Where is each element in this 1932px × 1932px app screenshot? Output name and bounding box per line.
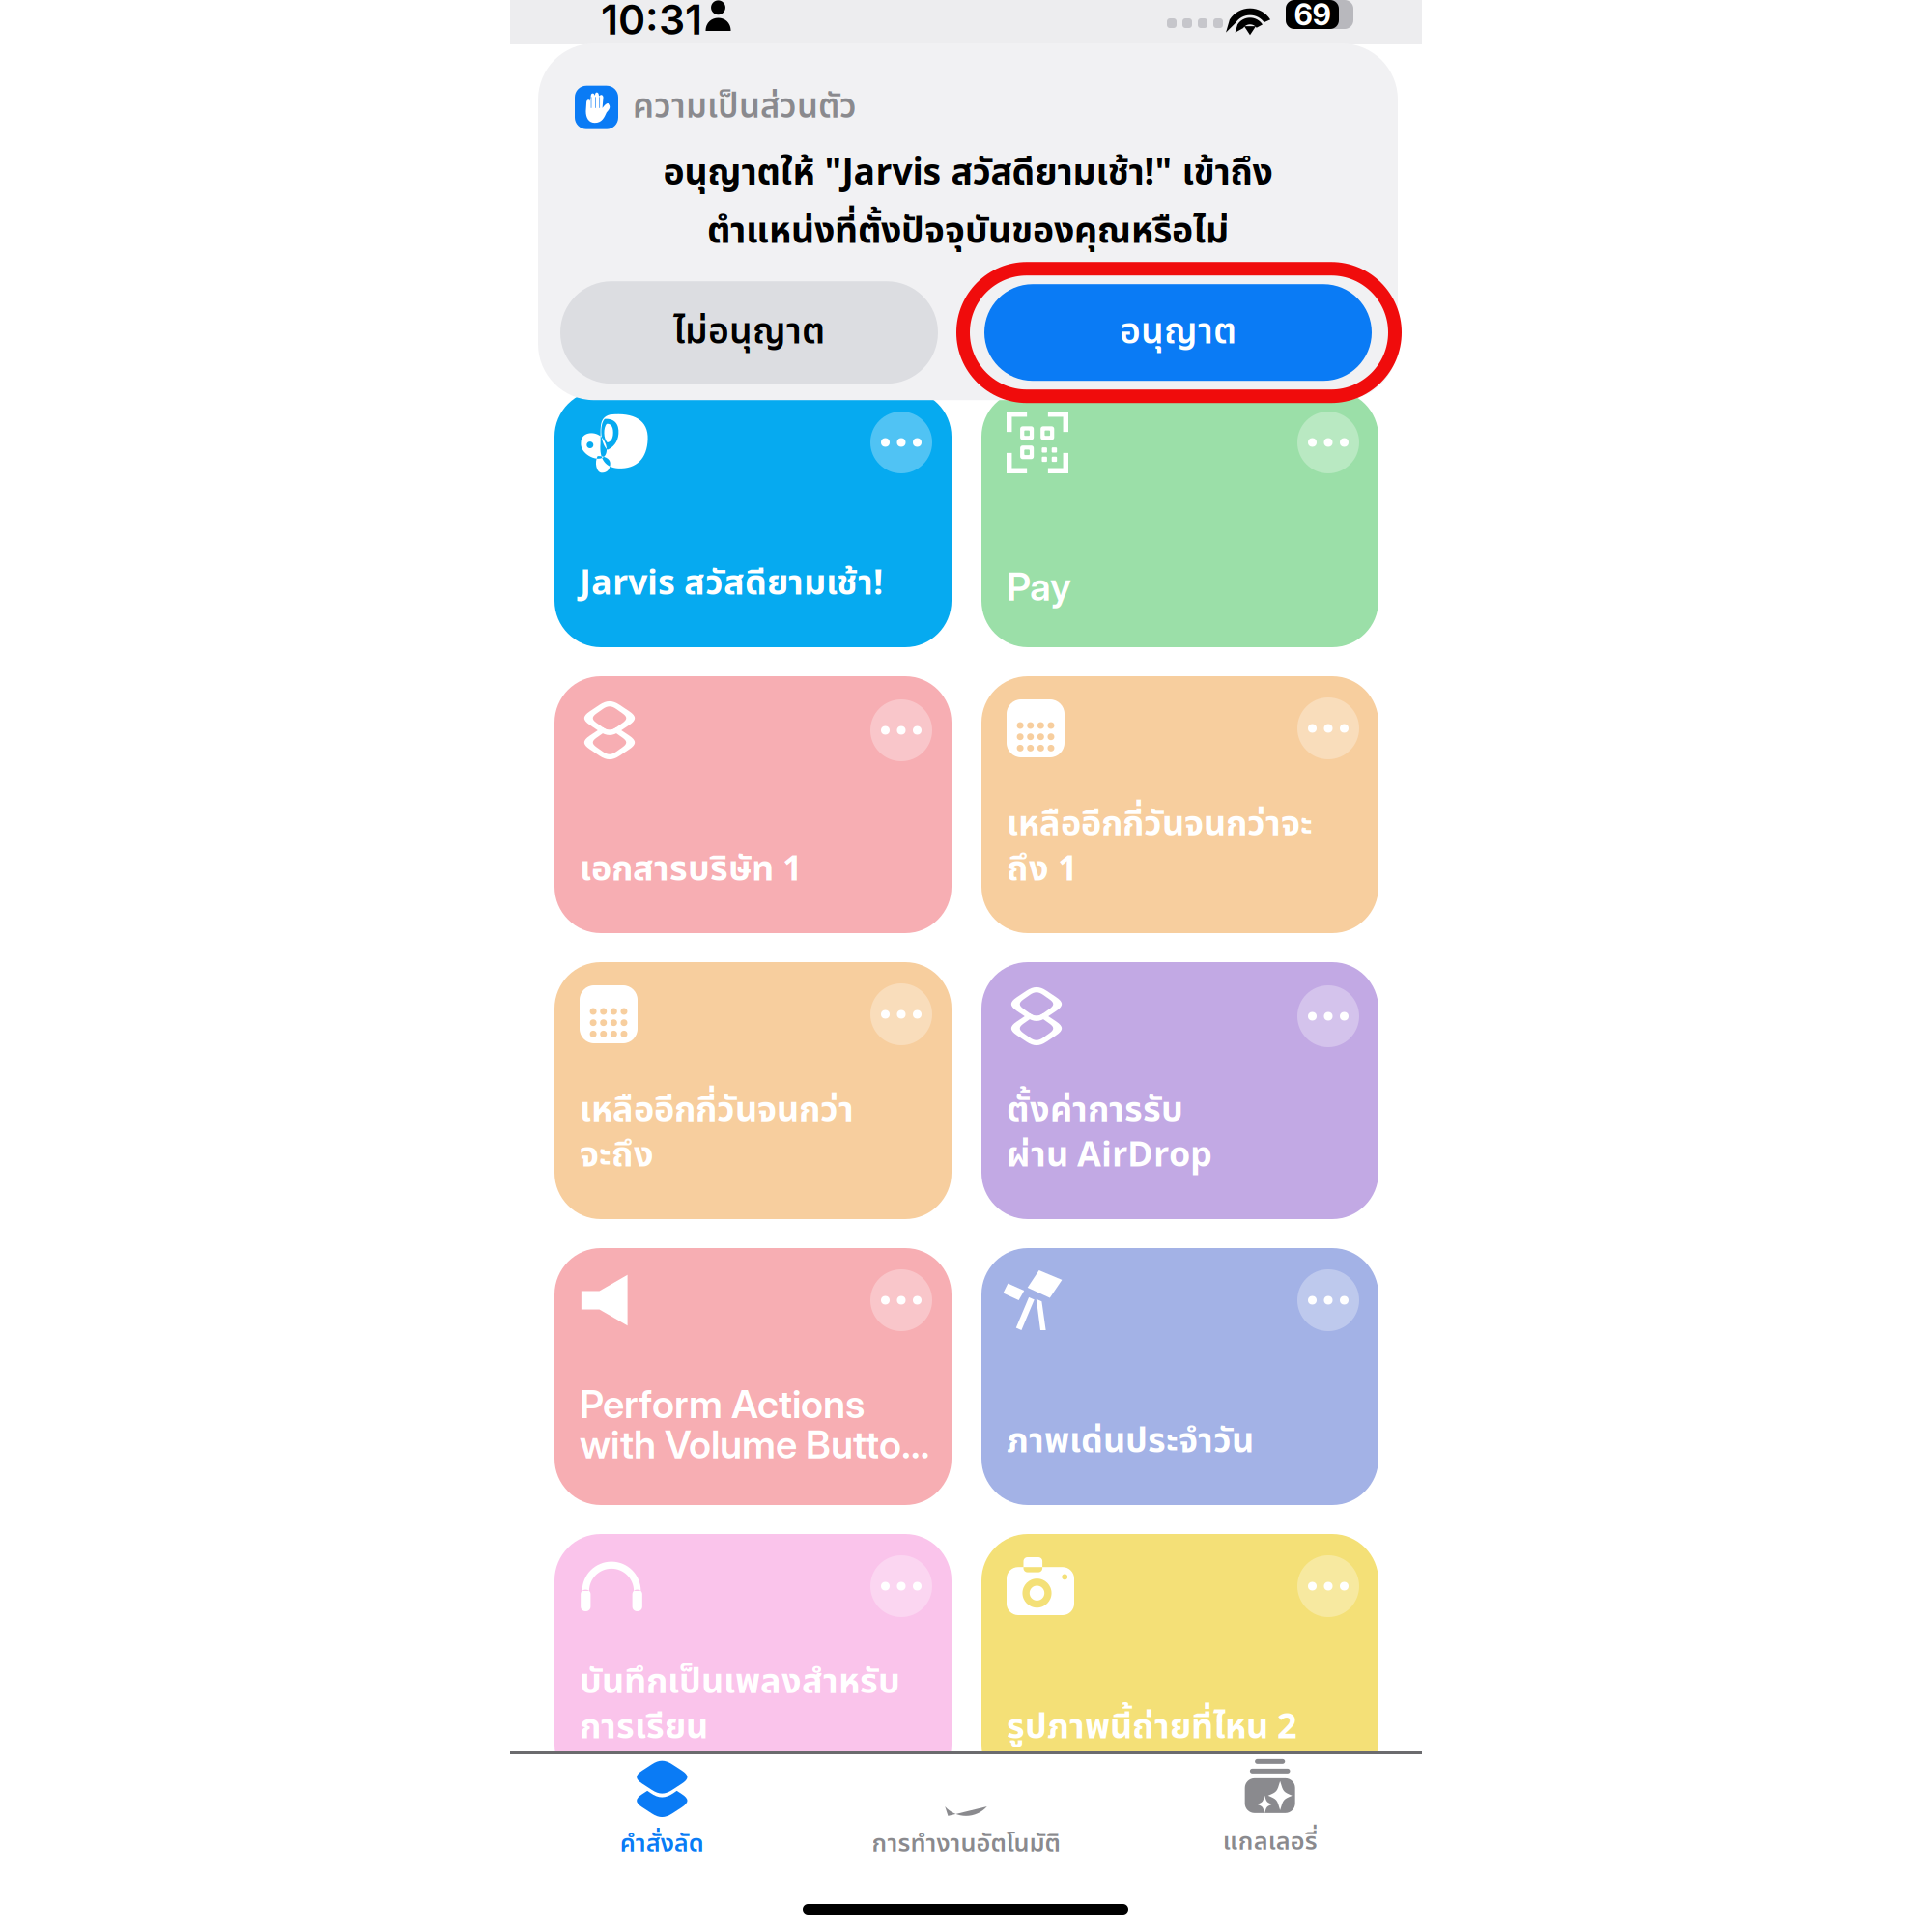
- button[interactable]: More options for รูปภาพนี้ถ่ายที่ไหน 2: [1297, 1555, 1359, 1617]
- staticText: ความเป็นส่วนตัว: [633, 82, 857, 133]
- button[interactable]: รูปภาพนี้ถ่ายที่ไหน 2: [981, 1534, 1378, 1791]
- button[interactable]: Jarvis สวัสดียามเช้า!: [554, 390, 952, 647]
- button[interactable]: ไม่อนุญาต: [560, 281, 938, 384]
- button[interactable]: ตั้งค่าการรับ ผ่าน AirDrop: [981, 962, 1378, 1219]
- staticText: 10:31: [601, 0, 702, 44]
- button[interactable]: More options for เอกสารบริษัท 1: [870, 699, 932, 761]
- staticText: เหลืออีกกี่วันจนกว่าจะ ถึง 1: [1007, 802, 1313, 893]
- button[interactable]: More options for Pay: [1297, 412, 1359, 473]
- staticText: ภาพเด่นประจำวัน: [1007, 1419, 1254, 1464]
- staticText: Perform Actions with Volume Butto…: [580, 1384, 929, 1464]
- button[interactable]: คำสั่งลัด: [510, 1751, 814, 1867]
- staticText: เอกสารบริษัท 1: [580, 847, 803, 893]
- staticText: ไม่อนุญาต: [673, 305, 825, 360]
- staticText: ตำแหน่งที่ตั้งปัจจุบันของคุณหรือไม่: [707, 205, 1229, 259]
- button[interactable]: การทำงานอัตโนมัติ: [814, 1751, 1118, 1867]
- staticText: Pay: [1007, 566, 1071, 607]
- button[interactable]: More options for ตั้งค่าการรับ ผ่าน AirD…: [1297, 985, 1359, 1047]
- staticText: 69: [1294, 0, 1331, 32]
- button[interactable]: Pay: [981, 390, 1378, 647]
- button[interactable]: อนุญาต: [963, 269, 1395, 396]
- button[interactable]: More options for Perform Actions with Vo…: [870, 1269, 932, 1331]
- button[interactable]: ภาพเด่นประจำวัน: [981, 1248, 1378, 1505]
- staticText: Jarvis สวัสดียามเช้า!: [580, 561, 883, 607]
- button[interactable]: More options for เหลืออีกกี่วันจนกว่า จะ…: [870, 983, 932, 1045]
- button[interactable]: More options for บันทึกเป็นเพลงสำหรับ กา…: [870, 1555, 932, 1617]
- button[interactable]: More options for ภาพเด่นประจำวัน: [1297, 1269, 1359, 1331]
- button[interactable]: More options for Jarvis สวัสดียามเช้า!: [870, 412, 932, 473]
- staticText: เหลืออีกกี่วันจนกว่า จะถึง: [580, 1088, 854, 1179]
- staticText: อนุญาต: [1120, 305, 1236, 360]
- button[interactable]: เหลืออีกกี่วันจนกว่า จะถึง: [554, 962, 952, 1219]
- staticText: บันทึกเป็นเพลงสำหรับ การเรียน: [580, 1660, 900, 1750]
- staticText: แกลเลอรี่: [1223, 1824, 1317, 1861]
- button[interactable]: เหลืออีกกี่วันจนกว่าจะ ถึง 1: [981, 676, 1378, 933]
- staticText: การทำงานอัตโนมัติ: [872, 1826, 1060, 1863]
- staticText: ตั้งค่าการรับ ผ่าน AirDrop: [1007, 1088, 1212, 1179]
- staticText: คำสั่งลัด: [620, 1826, 704, 1863]
- staticText: รูปภาพนี้ถ่ายที่ไหน 2: [1007, 1705, 1297, 1750]
- button[interactable]: แกลเลอรี่: [1118, 1751, 1422, 1867]
- button[interactable]: More options for เหลืออีกกี่วันจนกว่าจะ …: [1297, 697, 1359, 759]
- staticText: อนุญาตให้ "Jarvis สวัสดียามเช้า!" เข้าถึ…: [663, 146, 1273, 201]
- button[interactable]: Perform Actions with Volume Butto…: [554, 1248, 952, 1505]
- button[interactable]: เอกสารบริษัท 1: [554, 676, 952, 933]
- button[interactable]: บันทึกเป็นเพลงสำหรับ การเรียน: [554, 1534, 952, 1791]
